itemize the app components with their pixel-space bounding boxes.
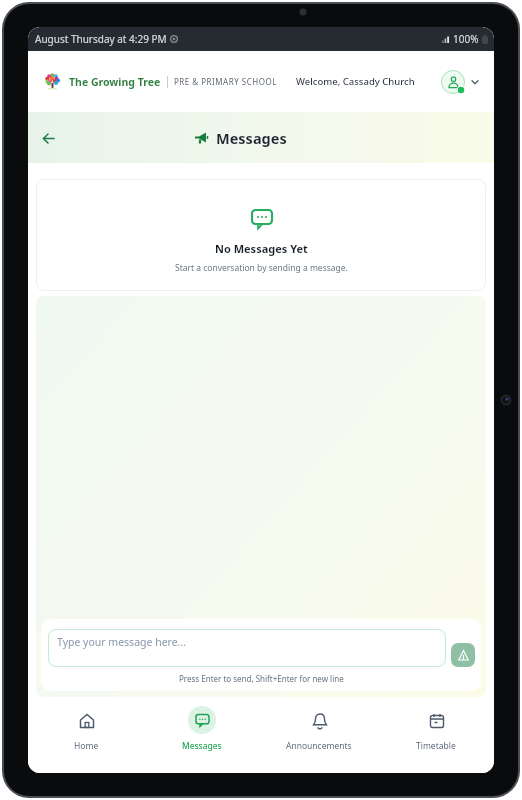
staticText: Home [74,740,99,752]
button[interactable]: Timetable [377,706,494,773]
staticText: PRE & PRIMARY SCHOOL [174,76,277,87]
button[interactable] [36,126,60,150]
staticText: The Growing Tree [69,75,161,89]
staticText: Type your message here... [57,635,187,649]
staticText: Timetable [416,740,456,752]
button[interactable] [441,70,465,94]
button[interactable]: Home [28,706,144,773]
staticText: Announcements [286,740,352,752]
staticText: Start a conversation by sending a messag… [175,262,348,274]
staticText: 100% [453,32,479,46]
staticText: Welcome, Cassady Church [296,75,415,88]
button[interactable]: Messages [144,706,260,773]
staticText: August Thursday at 4:29 PM [35,32,167,46]
button[interactable]: Announcements [260,706,377,773]
staticText: Messages [182,740,222,752]
button[interactable] [451,643,475,667]
staticText: No Messages Yet [215,241,308,256]
staticText: Messages [216,128,287,148]
staticText: Press Enter to send, Shift+Enter for new… [179,673,344,684]
